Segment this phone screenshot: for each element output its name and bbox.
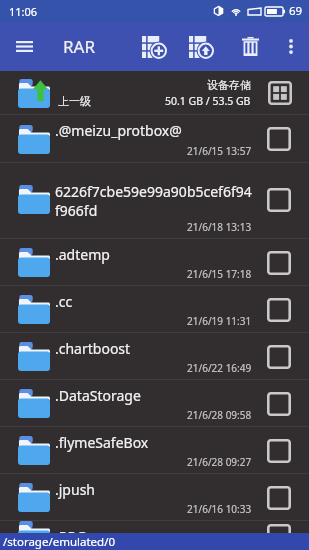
button[interactable]: Select .jpush [261, 474, 297, 521]
staticText: 21/6/16 10:33 [187, 502, 252, 516]
staticText: /storage/emulated/0 [3, 534, 116, 550]
button[interactable]: Select .adtemp [261, 239, 297, 286]
staticText: 21/6/22 16:49 [187, 361, 252, 375]
button[interactable]: Parent folder [0, 71, 309, 115]
button[interactable]: More options [273, 22, 309, 71]
button[interactable]: .flymeSafeBox [0, 427, 309, 474]
staticText: 69 [289, 3, 303, 19]
staticText: 50.1 GB / 53.5 GB [165, 94, 251, 108]
button[interactable]: 6226f7cbe59e99a90b5cef6f94 [0, 163, 309, 239]
button[interactable]: Delete [230, 22, 270, 71]
button[interactable]: .jpush [0, 474, 309, 521]
button[interactable]: Select .flymeSafeBox [261, 427, 297, 474]
staticText: 上一级 [58, 94, 91, 108]
button[interactable]: Select .cc [261, 286, 297, 333]
button[interactable]: Navigation menu [1, 22, 47, 71]
button[interactable]: .@meizu_protbox@ [0, 115, 309, 163]
staticText: .chartboost [55, 339, 131, 358]
button[interactable]: Change view mode [262, 71, 298, 115]
button[interactable]: Select .RRG [261, 521, 297, 550]
staticText: 6226f7cbe59e99a90b5cef6f94 [55, 182, 252, 201]
staticText: 21/6/28 09:58 [187, 408, 252, 422]
button[interactable]: Select folder [261, 185, 297, 215]
staticText: .adtemp [55, 245, 110, 264]
staticText: .cc [55, 292, 73, 311]
staticText: 11:06 [9, 4, 38, 19]
button[interactable]: .RRG [0, 521, 309, 550]
staticText: 21/6/15 17:18 [187, 267, 252, 281]
button[interactable]: .DataStorage [0, 380, 309, 427]
button[interactable]: Add to archive [132, 22, 176, 71]
staticText: 21/6/18 13:13 [187, 220, 252, 234]
button[interactable]: .chartboost [0, 333, 309, 380]
button[interactable]: .adtemp [0, 239, 309, 286]
staticText: .flymeSafeBox [55, 433, 149, 452]
staticText: 21/6/15 13:57 [187, 144, 252, 158]
staticText: 21/6/28 09:27 [187, 455, 252, 469]
staticText: 设备存储 [207, 78, 251, 92]
button[interactable]: .cc [0, 286, 309, 333]
staticText: .RRG [55, 527, 87, 546]
staticText: 21/6/19 11:31 [187, 314, 252, 328]
staticText: 21/6/20 08:10 [187, 531, 252, 545]
staticText: RAR [63, 35, 96, 58]
button[interactable]: Select .DataStorage [261, 380, 297, 427]
button[interactable]: Extract archive [179, 22, 223, 71]
button[interactable]: Select .@meizu_protbox@ [261, 115, 297, 163]
staticText: .jpush [55, 480, 95, 499]
staticText: f966fd [55, 201, 98, 220]
button[interactable]: Select .chartboost [261, 333, 297, 380]
staticText: .@meizu_protbox@ [55, 121, 182, 140]
staticText: .DataStorage [55, 386, 141, 405]
